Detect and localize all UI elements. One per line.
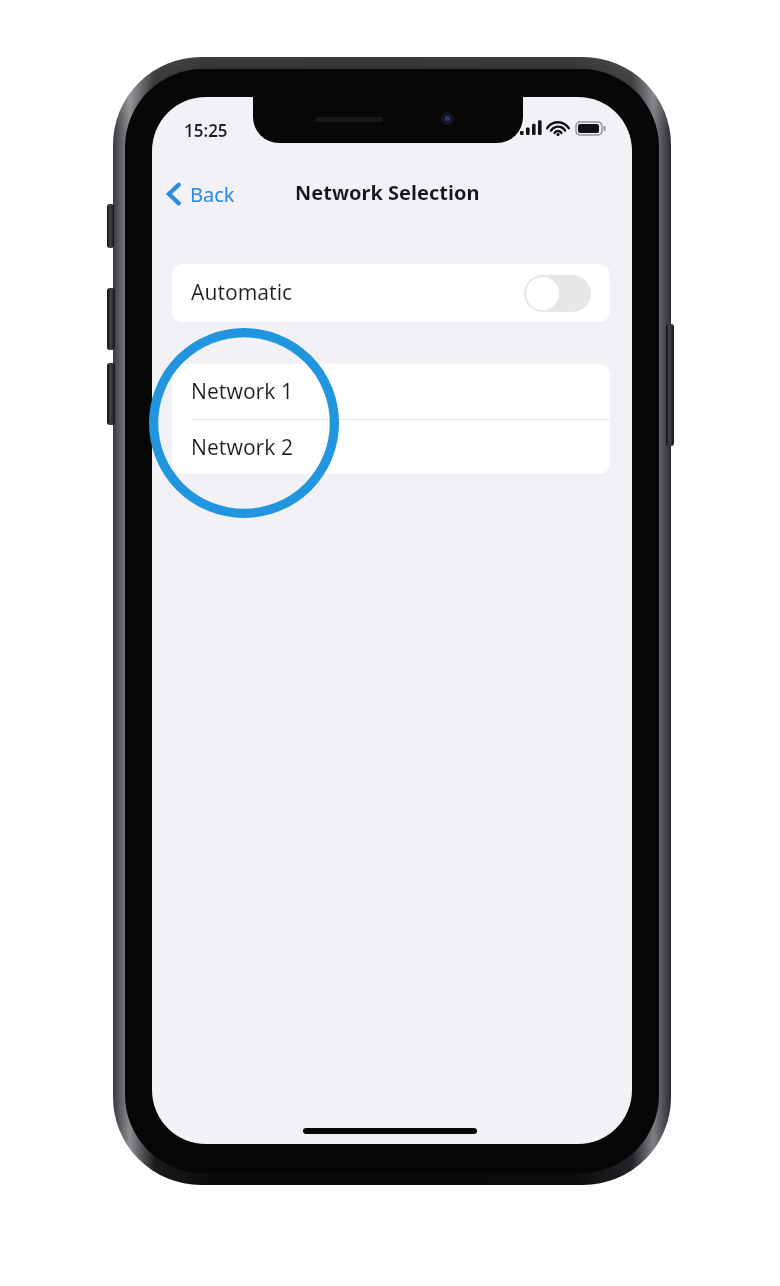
button[interactable]: Automatic (172, 264, 610, 322)
staticText: Network 1 (191, 377, 293, 406)
staticText: Back (190, 181, 235, 208)
button[interactable]: Back (158, 173, 254, 215)
staticText: Automatic (191, 278, 293, 307)
staticText: 15:25 (184, 119, 228, 142)
button[interactable]: Network 1 (172, 364, 610, 419)
staticText: Network 2 (191, 433, 293, 462)
button[interactable]: Network 2 (172, 420, 610, 474)
staticText: Network Selection (295, 179, 480, 206)
button[interactable]: Automatic network selection toggle, off (524, 275, 591, 312)
